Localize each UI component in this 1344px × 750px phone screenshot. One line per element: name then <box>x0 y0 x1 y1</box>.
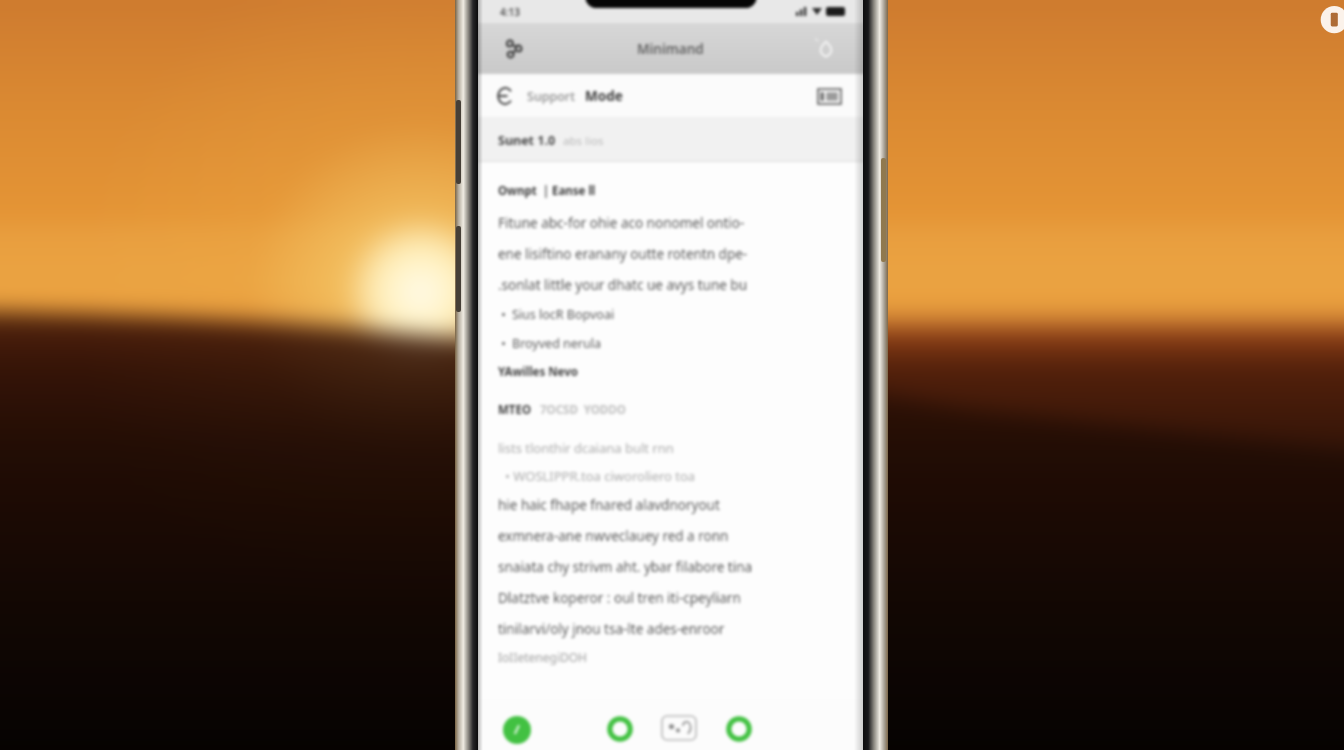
staticText: snaiata chy strivm aht. ybar filabore ti… <box>498 558 851 576</box>
staticText: ene lisiftino eranany outte rotentn dpe- <box>498 245 851 263</box>
staticText: Dlatztve koperor : oul tren iti-cpeyliar… <box>498 589 851 607</box>
button[interactable]: Library <box>591 716 649 750</box>
staticText: Fitune abc-for ohie aco nonomel ontio- <box>498 214 851 232</box>
staticText: Broyved nerula <box>512 335 601 352</box>
staticText: Sius locR Bopvoai <box>512 306 615 323</box>
staticText: lists tlonthir dcaiana bult rnn <box>498 439 851 457</box>
staticText: tinilarvi/oly jnou tsa-lte ades-enroor <box>498 620 851 638</box>
staticText: exmnera-ane nwveclauey red a ronn <box>498 527 851 545</box>
staticText: MTEO <box>498 402 532 418</box>
staticText: Ownpt | Eanse ll <box>498 183 596 199</box>
staticText: 4:13 <box>500 5 520 19</box>
staticText: hie haic fhape fnared alavdnoryout <box>498 496 851 514</box>
staticText: YAwilles Nevo <box>498 364 578 380</box>
staticText: • WOSLIPPR.toa ciworoliero toa <box>505 467 851 485</box>
staticText: Support <box>527 88 575 105</box>
button[interactable]: Share <box>498 33 530 65</box>
button[interactable]: Profile <box>710 716 768 750</box>
staticText: 7OCSD YODDO <box>540 402 626 418</box>
button[interactable]: Notes <box>650 716 708 750</box>
staticText: Minimand <box>637 40 704 58</box>
staticText: Mode <box>585 87 623 105</box>
button[interactable]: Home <box>488 716 546 750</box>
staticText: Sunet 1.0 <box>498 132 556 149</box>
button[interactable]: Theme <box>811 34 841 64</box>
button[interactable]: Support <box>478 74 863 118</box>
staticText: abs lios <box>563 133 604 149</box>
button[interactable]: Display options <box>815 85 843 107</box>
staticText: .sonlat little your dhatc ue avys tune b… <box>498 276 851 294</box>
staticText: IoIIetenegiDOH <box>498 649 588 665</box>
